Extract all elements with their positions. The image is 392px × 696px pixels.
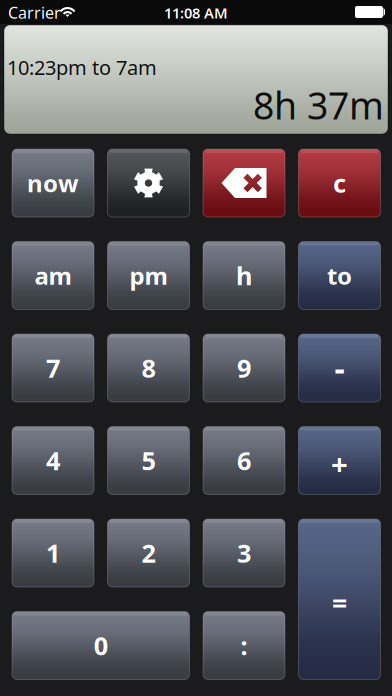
- staticText: Carrier: [8, 2, 61, 23]
- button[interactable]: pm: [107, 241, 189, 309]
- button[interactable]: 2: [107, 519, 189, 587]
- staticText: 9: [237, 351, 251, 385]
- button[interactable]: 4: [12, 426, 94, 494]
- staticText: -: [334, 347, 344, 389]
- staticText: now: [27, 167, 79, 199]
- staticText: 8: [141, 351, 155, 385]
- button[interactable]: c: [298, 149, 380, 217]
- button[interactable]: 7: [12, 334, 94, 402]
- staticText: h: [236, 259, 252, 292]
- button[interactable]: h: [203, 241, 285, 309]
- staticText: 10:23pm to 7am: [7, 54, 157, 81]
- button[interactable]: 1: [12, 519, 94, 587]
- button[interactable]: +: [298, 426, 380, 494]
- button[interactable]: 5: [107, 426, 189, 494]
- button[interactable]: 8: [107, 334, 189, 402]
- staticText: 11:08 AM: [164, 3, 228, 22]
- staticText: 7: [46, 351, 60, 385]
- staticText: 2: [141, 536, 155, 570]
- button[interactable]: 3: [203, 519, 285, 587]
- button[interactable]: am: [12, 241, 94, 309]
- button[interactable]: Settings: [107, 149, 189, 217]
- button[interactable]: now: [12, 149, 94, 217]
- staticText: 0: [94, 629, 108, 662]
- button[interactable]: 6: [203, 426, 285, 494]
- button[interactable]: 9: [203, 334, 285, 402]
- staticText: pm: [129, 260, 167, 291]
- button[interactable]: 0: [12, 611, 189, 679]
- button[interactable]: Delete: [203, 149, 285, 217]
- button[interactable]: =: [298, 519, 380, 679]
- staticText: to: [327, 260, 352, 291]
- staticText: 5: [141, 444, 155, 477]
- staticText: c: [333, 166, 346, 200]
- staticText: am: [34, 260, 71, 291]
- button[interactable]: to: [298, 241, 380, 309]
- staticText: +: [331, 444, 348, 483]
- staticText: 8h 37m: [253, 80, 384, 130]
- staticText: 6: [237, 444, 251, 477]
- button[interactable]: :: [203, 611, 285, 679]
- staticText: 3: [237, 536, 251, 570]
- staticText: 1: [46, 536, 60, 570]
- button[interactable]: -: [298, 334, 380, 402]
- staticText: 4: [46, 444, 60, 477]
- staticText: =: [332, 585, 347, 621]
- staticText: :: [240, 629, 247, 662]
